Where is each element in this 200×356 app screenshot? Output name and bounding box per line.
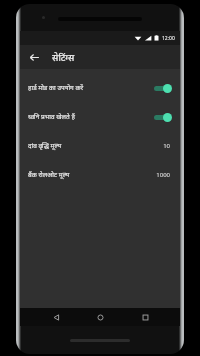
staticText: हार्ड मोड का उपयोग करें <box>28 83 152 92</box>
staticText: ध्वनि प्रभाव खेलते हैं <box>28 112 152 121</box>
button[interactable]: Back <box>47 308 65 326</box>
staticText: दांव वृद्धि मूल्य <box>28 141 163 150</box>
staticText: 1000 <box>156 171 170 179</box>
staticText: 10 <box>163 142 170 150</box>
staticText: सेटिंग्स <box>52 51 75 63</box>
button[interactable]: दांव वृद्धि मूल्य <box>20 131 180 160</box>
button[interactable]: Back <box>24 47 44 67</box>
staticText: बैंक रोलओट मूल्य <box>28 170 156 179</box>
staticText: 12:00 <box>162 35 175 42</box>
button[interactable]: ध्वनि प्रभाव खेलते हैं <box>20 102 180 131</box>
button[interactable]: Recent apps <box>136 308 154 326</box>
button[interactable]: Home <box>91 308 109 326</box>
button[interactable]: बैंक रोलओट मूल्य <box>20 160 180 189</box>
button[interactable]: हार्ड मोड का उपयोग करें <box>20 73 180 102</box>
